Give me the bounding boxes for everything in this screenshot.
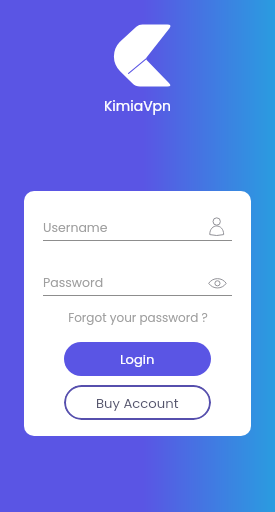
button[interactable]: Account	[205, 216, 229, 240]
button[interactable]: Login	[64, 342, 211, 376]
button[interactable]: Forgot your password ?	[43, 306, 232, 328]
staticText: Buy Account	[96, 394, 179, 412]
button[interactable]: Show password	[205, 271, 229, 295]
staticText: Username	[43, 219, 108, 236]
staticText: Password	[43, 274, 104, 291]
button[interactable]: Buy Account	[64, 385, 211, 420]
staticText: KimiaVpn	[0, 96, 275, 116]
staticText: Forgot your password ?	[68, 309, 208, 326]
staticText: Login	[120, 350, 155, 368]
